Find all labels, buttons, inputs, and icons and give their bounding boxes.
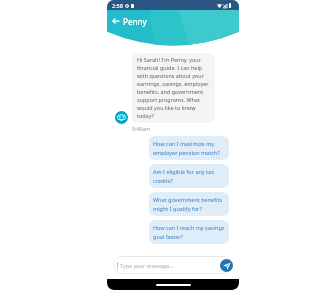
staticText: Am I eligible for any tax credits? bbox=[153, 168, 225, 184]
button[interactable]: Am I eligible for any tax credits? bbox=[149, 164, 229, 188]
button[interactable]: How can I reach my savings goal faster? bbox=[149, 220, 229, 244]
staticText: 9:46am bbox=[132, 125, 151, 132]
button[interactable]: What government benefits might I qualify… bbox=[149, 192, 229, 216]
button[interactable]: Back bbox=[110, 15, 122, 27]
button[interactable]: How can I maximize my employer pension m… bbox=[149, 136, 229, 160]
staticText: Penny bbox=[123, 16, 147, 27]
staticText: How can I reach my savings goal faster? bbox=[153, 224, 225, 240]
button[interactable]: Type your message... bbox=[113, 256, 233, 274]
staticText: 2:58 bbox=[112, 2, 123, 9]
staticText: How can I maximize my employer pension m… bbox=[153, 140, 225, 156]
button[interactable]: Send bbox=[220, 259, 233, 272]
staticText: Hi Sarah! I'm Penny, your financial guid… bbox=[137, 56, 210, 120]
staticText: Type your message... bbox=[120, 262, 174, 269]
button[interactable]: Home bbox=[107, 279, 239, 290]
staticText: What government benefits might I qualify… bbox=[153, 196, 225, 212]
